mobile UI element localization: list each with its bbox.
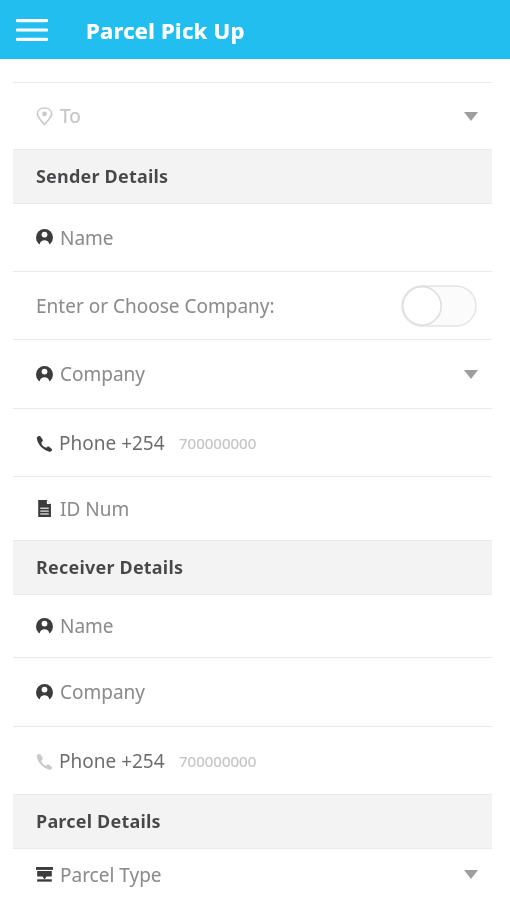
- button[interactable]: Company: [13, 340, 492, 408]
- staticText: Receiver Details: [36, 555, 184, 580]
- staticText: Name: [60, 613, 114, 639]
- button[interactable]: Enter or Choose Company toggle: [402, 285, 476, 327]
- staticText: Company: [60, 361, 146, 387]
- button[interactable]: Company: [13, 658, 492, 726]
- staticText: Parcel Pick Up: [86, 15, 245, 45]
- staticText: Sender Details: [36, 164, 169, 189]
- staticText: Phone +254: [59, 430, 165, 456]
- staticText: Name: [60, 225, 114, 251]
- staticText: 700000000: [179, 751, 257, 771]
- button[interactable]: Phone +254: [13, 727, 492, 794]
- staticText: ID Num: [60, 496, 130, 522]
- button[interactable]: To: [13, 83, 492, 149]
- button[interactable]: Open navigation menu: [10, 8, 54, 52]
- button[interactable]: Phone +254: [13, 409, 492, 476]
- button[interactable]: Enter or Choose Company:: [13, 272, 492, 339]
- button[interactable]: ID Num: [13, 477, 492, 540]
- staticText: Parcel Details: [36, 809, 161, 834]
- button[interactable]: Name: [13, 595, 492, 657]
- staticText: Company: [60, 679, 146, 705]
- button[interactable]: Parcel Type: [13, 849, 492, 900]
- staticText: 700000000: [179, 433, 257, 453]
- staticText: Parcel Type: [60, 862, 162, 888]
- button[interactable]: Name: [13, 204, 492, 271]
- staticText: To: [60, 103, 81, 129]
- staticText: Enter or Choose Company:: [36, 293, 275, 319]
- staticText: Phone +254: [59, 748, 165, 774]
